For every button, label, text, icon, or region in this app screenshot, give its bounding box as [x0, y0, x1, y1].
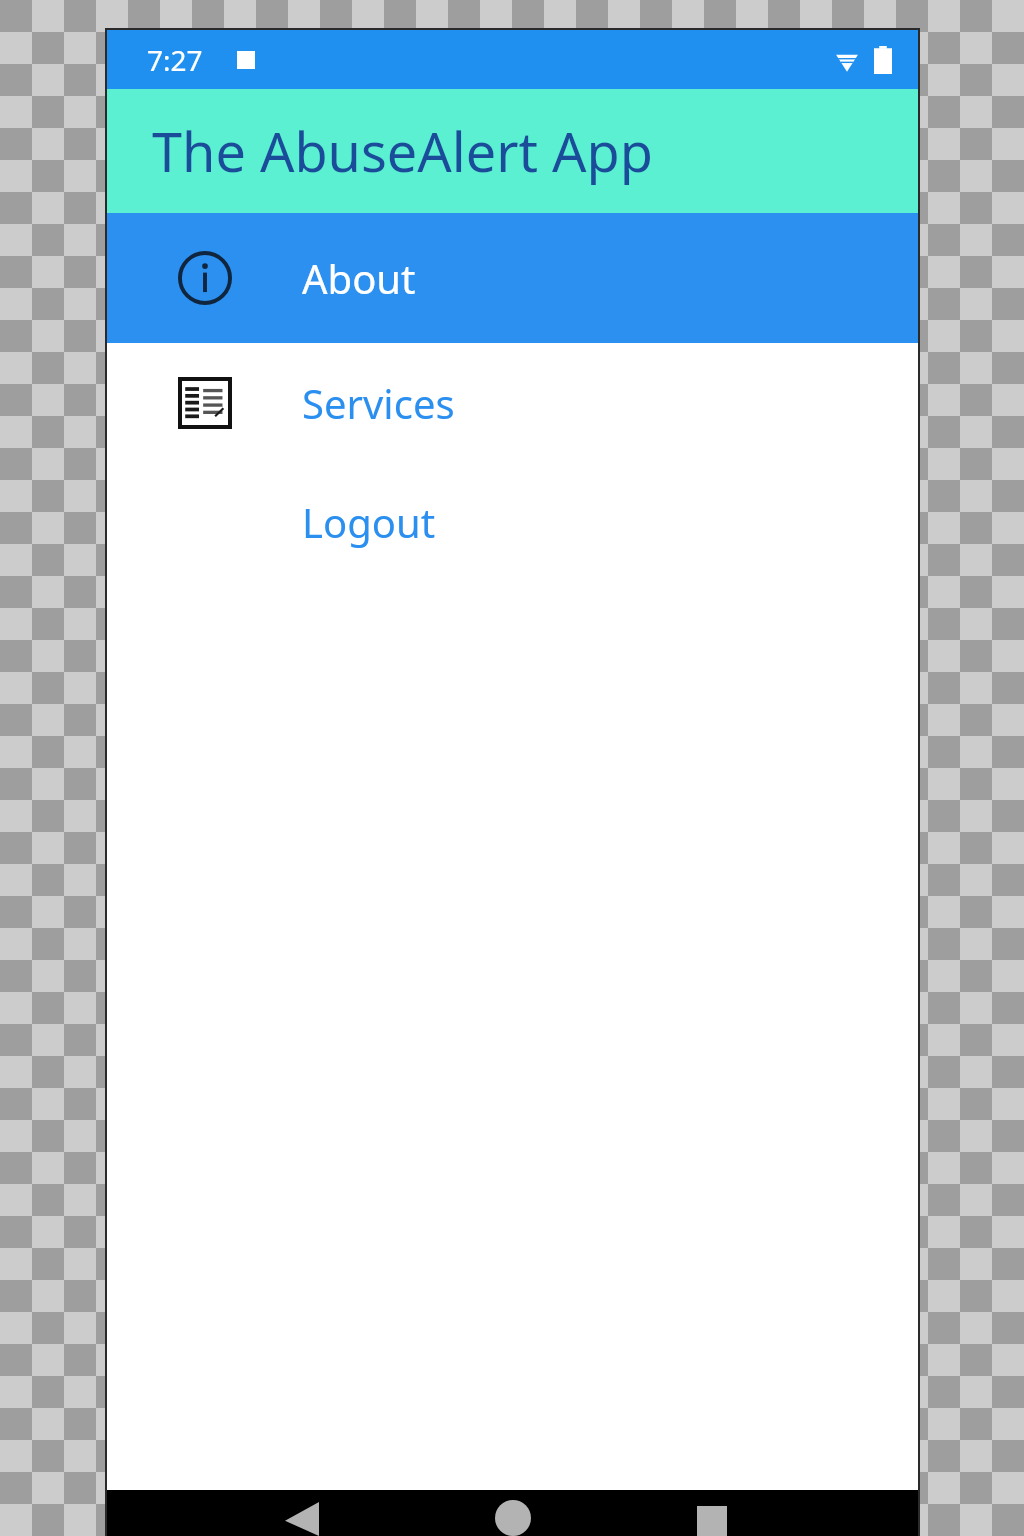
other: About information [178, 251, 232, 305]
staticText: The AbuseAlert App [152, 114, 653, 188]
staticText: Logout [302, 495, 436, 549]
button[interactable]: About information [107, 213, 918, 343]
button[interactable]: Logout [107, 463, 918, 581]
other: Services [182, 381, 228, 425]
staticText: 7:27 [147, 41, 203, 79]
button[interactable]: Back [267, 1490, 337, 1536]
button[interactable]: Services [107, 343, 918, 463]
button[interactable]: Recent apps [677, 1490, 747, 1536]
button[interactable]: Home [478, 1490, 548, 1536]
staticText: Services [302, 376, 455, 430]
staticText: About [302, 251, 416, 305]
